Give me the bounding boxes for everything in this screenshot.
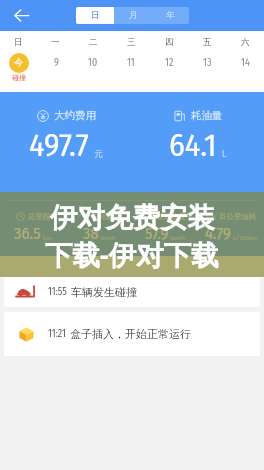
staticText: 11 [127,57,135,69]
staticText: 11:55 [48,286,67,298]
button[interactable]: 年 [152,7,189,24]
staticText: 平均速度 [90,212,120,221]
staticText: 4.79 [205,224,231,244]
staticText: 耗油量 [191,109,223,122]
staticText: 五 [203,37,212,48]
staticText: 下载-伊对下载 [45,236,219,274]
staticText: L/100km [233,234,258,242]
staticText: 10 [88,57,98,69]
staticText: 四 [165,37,174,48]
staticText: L [222,148,227,160]
staticText: 二 [89,37,98,48]
staticText: 日 [91,10,100,21]
staticText: 36.5 [14,224,41,244]
staticText: 一 [51,37,60,48]
staticText: 盒子插入，开始正常运行 [70,327,191,341]
button[interactable]: 11:21 [4,312,260,356]
button[interactable]: 10 [83,53,103,73]
staticText: 三 [127,37,136,48]
staticText: 伊对免费安装 [50,201,215,236]
staticText: 最高速度 [156,212,186,221]
staticText: 64.1 [169,126,217,164]
staticText: 38 [83,224,99,244]
staticText: 总里程 [28,212,51,221]
button[interactable]: 12 [159,53,179,73]
staticText: 57.9 [145,224,169,244]
button[interactable]: 日 [76,7,114,24]
staticText: 车辆发生碰撞 [71,285,137,299]
staticText: 12 [165,57,174,69]
staticText: km [43,234,52,242]
button[interactable]: 11 [121,53,141,73]
staticText: 百公里油耗 [219,212,257,221]
staticText: 11:21 [48,328,66,340]
staticText: 元 [94,149,103,160]
staticText: 六 [241,37,250,48]
staticText: 497.7 [29,126,89,164]
button[interactable]: Back [11,5,32,26]
staticText: km/h [171,234,186,242]
button[interactable]: 14 [235,53,255,73]
button[interactable]: 13 [197,53,217,73]
button[interactable]: 今 [9,53,29,82]
staticText: 今 [14,57,24,69]
staticText: km/h [101,234,116,242]
button[interactable]: 月 [114,7,152,24]
staticText: 年 [166,10,175,21]
staticText: 日 [14,37,23,48]
staticText: 月 [129,10,138,21]
staticText: 碰撞 [12,73,26,82]
staticText: 14 [241,57,250,69]
button[interactable]: 9 [46,53,66,73]
staticText: 13 [203,57,212,69]
staticText: 大约费用 [54,109,96,122]
button[interactable]: 11:55 [4,277,260,307]
staticText: 9 [54,57,59,69]
